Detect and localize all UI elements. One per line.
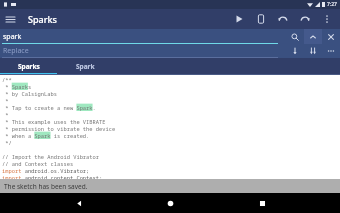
button[interactable]: Run — [228, 9, 250, 29]
staticText: * — [2, 97, 9, 104]
staticText: */ — [2, 139, 12, 146]
staticText: spark — [3, 32, 22, 42]
button[interactable]: Undo — [272, 9, 294, 29]
button[interactable]: Sparks — [0, 58, 57, 75]
button[interactable]: Spark — [57, 58, 114, 75]
button[interactable]: Replace — [286, 44, 304, 58]
button[interactable]: More options — [322, 44, 340, 58]
staticText: Sparks — [28, 13, 57, 25]
staticText: /** — [2, 76, 12, 83]
staticText: // Import the Android Vibrator — [2, 153, 100, 160]
button[interactable]: More options — [316, 9, 338, 29]
button[interactable]: Find previous — [304, 29, 322, 44]
staticText: The sketch has been saved. — [4, 182, 88, 191]
staticText: import android.content.Context; — [2, 174, 103, 179]
staticText: * Sparks — [2, 83, 32, 90]
button[interactable]: Home — [157, 193, 183, 213]
staticText: * This example uses the VIBRATE — [2, 118, 106, 125]
staticText: import android.os.Vibrator; — [2, 167, 90, 174]
button[interactable]: Replace — [0, 44, 286, 58]
staticText: * by CalsignLabs — [2, 90, 57, 97]
staticText: Spark — [76, 62, 95, 71]
button[interactable]: Search — [286, 30, 304, 44]
button[interactable]: The sketch has been saved. — [0, 179, 340, 193]
button[interactable]: Recent apps — [249, 193, 275, 213]
button[interactable]: Back — [66, 193, 92, 213]
button[interactable]: Redo — [294, 9, 316, 29]
staticText: 7:27 — [327, 1, 337, 8]
button[interactable]: Close search — [322, 30, 340, 44]
staticText: * permission to vibrate the device — [2, 125, 116, 132]
staticText: Replace — [3, 46, 29, 56]
button[interactable]: spark — [0, 29, 286, 44]
button[interactable]: Replace all — [304, 44, 322, 58]
staticText: // and Context classes — [2, 160, 74, 167]
staticText: * Tap to create a new Spark. — [2, 104, 96, 111]
staticText: * — [2, 111, 9, 118]
button[interactable]: Open navigation drawer — [0, 9, 20, 29]
staticText: Sparks — [18, 62, 40, 71]
staticText: * when a Spark is created. — [2, 132, 90, 139]
button[interactable]: Device — [250, 9, 272, 29]
